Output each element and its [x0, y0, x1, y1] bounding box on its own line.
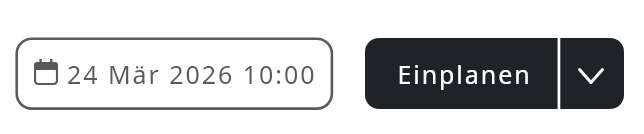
button[interactable]: Weitere Optionen — [562, 38, 624, 109]
staticText: 24 Mär 2026 10:00 — [67, 57, 317, 91]
button[interactable]: Einplanen — [365, 38, 559, 109]
staticText: Einplanen — [397, 57, 532, 91]
button[interactable]: 24 Mär 2026 10:00 — [15, 37, 333, 110]
